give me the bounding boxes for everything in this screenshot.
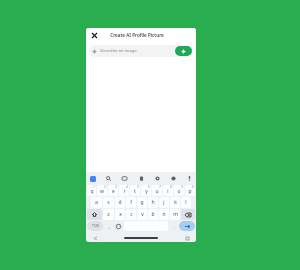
staticText: 2	[104, 185, 106, 189]
button[interactable]: k	[170, 197, 180, 208]
staticText: j	[163, 199, 165, 206]
button[interactable]: b	[148, 209, 158, 220]
button[interactable]: h	[148, 197, 158, 208]
button[interactable]: 0	[185, 185, 195, 196]
staticText: o	[177, 188, 181, 195]
button[interactable]: Close	[89, 30, 100, 41]
button[interactable]: 9	[174, 185, 184, 196]
button[interactable]: 3	[108, 185, 118, 196]
button[interactable]: Recents	[184, 235, 190, 241]
staticText: s	[107, 199, 110, 206]
staticText: 3	[115, 185, 117, 189]
staticText: 0	[192, 185, 194, 189]
button[interactable]: Enter	[179, 221, 195, 231]
button[interactable]: Sticker	[169, 174, 178, 183]
button[interactable]: 2	[97, 185, 107, 196]
button[interactable]: v	[137, 209, 147, 220]
button[interactable]: Search	[104, 174, 113, 183]
staticText: ,	[108, 224, 110, 230]
button[interactable]: d	[115, 197, 125, 208]
button[interactable]: Emoji	[114, 221, 123, 232]
staticText: a	[95, 199, 98, 206]
staticText: ?123	[92, 224, 99, 228]
staticText: Create AI Profile Picture	[110, 32, 164, 38]
button[interactable]: GIF	[120, 174, 129, 183]
staticText: 4	[126, 185, 128, 189]
button[interactable]: f	[126, 197, 136, 208]
staticText: 1	[93, 185, 95, 189]
button[interactable]: z	[103, 209, 114, 220]
button[interactable]: Gboard	[88, 174, 97, 183]
button[interactable]: Back	[92, 235, 98, 241]
staticText: b	[151, 211, 155, 218]
button[interactable]: c	[126, 209, 136, 220]
button[interactable]: g	[137, 197, 147, 208]
staticText: g	[140, 199, 144, 206]
staticText: 5	[137, 185, 139, 189]
staticText: f	[130, 199, 132, 206]
button[interactable]: s	[103, 197, 114, 208]
staticText: q	[90, 188, 94, 195]
staticText: 7	[159, 185, 161, 189]
staticText: 8	[170, 185, 172, 189]
staticText: l	[185, 199, 187, 206]
button[interactable]: ?123	[87, 221, 103, 231]
staticText: k	[174, 199, 177, 206]
staticText: n	[162, 211, 166, 218]
staticText: 9	[181, 185, 183, 189]
button[interactable]: Clipboard	[137, 174, 146, 183]
button[interactable]: 4	[119, 185, 129, 196]
button[interactable]: 8	[163, 185, 173, 196]
staticText: p	[188, 188, 192, 195]
staticText: r	[123, 188, 126, 195]
staticText: x	[119, 211, 122, 218]
button[interactable]: a	[91, 197, 102, 208]
staticText: h	[151, 199, 155, 206]
staticText: 6	[148, 185, 150, 189]
button[interactable]: 6	[141, 185, 151, 196]
button[interactable]: j	[159, 197, 169, 208]
staticText: u	[155, 188, 159, 195]
button[interactable]: Describe an image	[89, 45, 193, 57]
staticText: c	[130, 211, 133, 218]
button[interactable]: 1	[87, 185, 96, 196]
button[interactable]: 7	[152, 185, 162, 196]
staticText: i	[167, 188, 169, 195]
button[interactable]: Generate	[175, 46, 192, 56]
button[interactable]: n	[159, 209, 169, 220]
button[interactable]: Settings	[153, 174, 162, 183]
button[interactable]: Backspace	[181, 209, 195, 220]
button[interactable]: 5	[130, 185, 140, 196]
button[interactable]: Shift	[87, 209, 102, 220]
staticText: w	[100, 188, 104, 195]
staticText: z	[107, 211, 110, 218]
staticText: t	[134, 188, 136, 195]
staticText: e	[112, 188, 115, 195]
button[interactable]: ,	[104, 221, 113, 232]
button[interactable]: .	[169, 221, 178, 232]
button[interactable]: Voice input	[185, 174, 194, 183]
staticText: v	[141, 211, 144, 218]
button[interactable]: m	[170, 209, 180, 220]
button[interactable]: x	[115, 209, 125, 220]
staticText: d	[118, 199, 122, 206]
button[interactable]: l	[181, 197, 191, 208]
staticText: m	[173, 211, 178, 218]
staticText: .	[173, 224, 175, 230]
staticText: Describe an image	[100, 48, 137, 54]
staticText: y	[145, 188, 148, 195]
